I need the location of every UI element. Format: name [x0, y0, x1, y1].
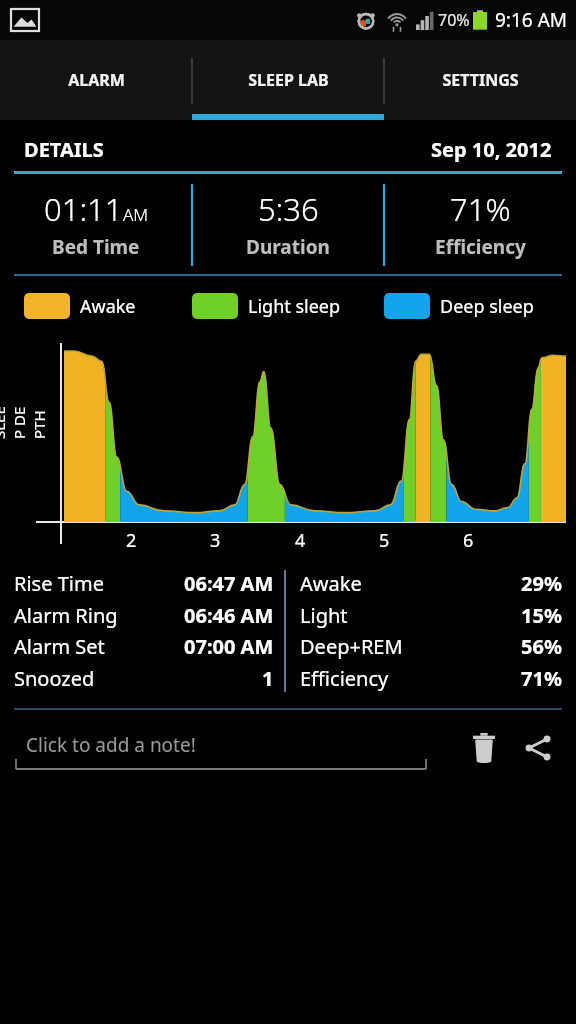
- staticText: 01:11: [44, 188, 123, 230]
- staticText: Alarm Set: [14, 633, 105, 660]
- button[interactable]: Alarm Ring: [14, 602, 274, 629]
- staticText: 5: [379, 528, 390, 553]
- staticText: 15%: [521, 602, 562, 629]
- button[interactable]: Snoozed: [14, 665, 274, 692]
- button[interactable]: Alarm Set: [14, 633, 274, 660]
- staticText: 2: [126, 528, 137, 553]
- staticText: Bed Time: [52, 234, 140, 260]
- staticText: 1: [262, 665, 274, 692]
- button[interactable]: Efficiency: [300, 665, 562, 692]
- button[interactable]: Share: [514, 724, 562, 772]
- staticText: 9:16 AM: [495, 7, 568, 33]
- staticText: Deep sleep: [440, 294, 534, 319]
- staticText: 71%: [450, 188, 511, 230]
- staticText: Rise Time: [14, 570, 104, 597]
- staticText: SLEEP LAB: [248, 69, 329, 91]
- staticText: Light sleep: [248, 294, 341, 319]
- staticText: 6: [463, 528, 474, 553]
- button[interactable]: Awake: [300, 570, 562, 597]
- staticText: AM: [123, 203, 149, 226]
- staticText: Snoozed: [14, 665, 95, 692]
- button[interactable]: Light sleep: [192, 276, 384, 336]
- staticText: Click to add a note!: [26, 732, 196, 758]
- button[interactable]: 01:11: [0, 174, 192, 274]
- staticText: Awake: [300, 570, 362, 597]
- staticText: Sep 10, 2012: [431, 136, 552, 163]
- staticText: 06:47 AM: [184, 570, 274, 597]
- staticText: Efficiency: [300, 665, 389, 692]
- staticText: 06:46 AM: [184, 602, 274, 629]
- button[interactable]: Rise Time: [14, 570, 274, 597]
- staticText: Alarm Ring: [14, 602, 118, 629]
- staticText: Duration: [246, 234, 330, 260]
- staticText: 5:36: [258, 188, 319, 230]
- staticText: Awake: [80, 294, 136, 319]
- button[interactable]: SLEEP LAB: [192, 40, 384, 120]
- button[interactable]: Light: [300, 602, 562, 629]
- staticText: 56%: [521, 633, 562, 660]
- staticText: Efficiency: [435, 234, 526, 260]
- staticText: DETAILS: [24, 136, 104, 163]
- staticText: SLEEP DEPTH: [0, 405, 49, 439]
- staticText: Light: [300, 602, 348, 629]
- staticText: 70%: [438, 9, 470, 31]
- button[interactable]: Click to add a note!: [14, 721, 446, 775]
- staticText: SETTINGS: [442, 69, 519, 91]
- button[interactable]: Deep+REM: [300, 633, 562, 660]
- staticText: 4: [295, 528, 306, 553]
- staticText: Deep+REM: [300, 633, 403, 660]
- staticText: 71%: [521, 665, 562, 692]
- button[interactable]: 5:36: [192, 174, 384, 274]
- staticText: 3: [210, 528, 221, 553]
- button[interactable]: 71%: [384, 174, 576, 274]
- button[interactable]: SETTINGS: [384, 40, 576, 120]
- button[interactable]: Delete: [460, 724, 508, 772]
- staticText: ALARM: [68, 69, 125, 91]
- staticText: 29%: [521, 570, 562, 597]
- button[interactable]: Deep sleep: [384, 276, 576, 336]
- button[interactable]: Awake: [24, 276, 192, 336]
- button[interactable]: ALARM: [0, 40, 192, 120]
- staticText: 07:00 AM: [184, 633, 274, 660]
